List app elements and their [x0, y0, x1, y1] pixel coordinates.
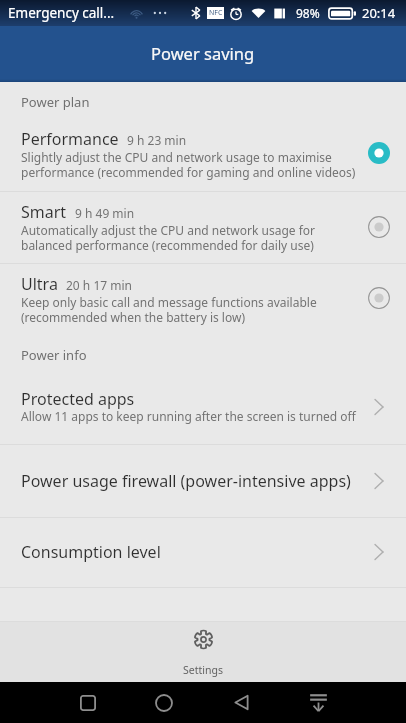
staticText: Settings — [183, 663, 223, 677]
button[interactable]: Smart — [362, 210, 396, 244]
button[interactable]: Performance — [0, 123, 406, 191]
button[interactable]: Home — [142, 682, 186, 723]
button[interactable]: Consumption level — [0, 517, 406, 587]
button[interactable]: Ultra — [362, 281, 396, 315]
staticText: Consumption level — [21, 541, 161, 563]
button[interactable]: Power usage firewall (power-intensive ap… — [0, 444, 406, 517]
staticText: Power plan — [21, 93, 90, 111]
button[interactable]: Back — [219, 682, 263, 723]
staticText: performance (recommended for gaming and … — [21, 164, 356, 180]
staticText: 98% — [296, 5, 320, 21]
staticText: Slightly adjust the CPU and network usag… — [21, 149, 332, 165]
staticText: Ultra — [21, 273, 58, 295]
staticText: Performance — [21, 128, 119, 150]
staticText: Smart — [21, 201, 67, 223]
staticText: NFC — [209, 8, 223, 18]
staticText: Power usage firewall (power-intensive ap… — [21, 470, 351, 492]
staticText: Power saving — [151, 42, 255, 64]
button[interactable]: Selected — [362, 136, 396, 170]
staticText: Keep only basic call and message functio… — [21, 294, 317, 310]
staticText: 9 h 49 min — [75, 205, 135, 221]
button[interactable]: Recents — [66, 682, 110, 723]
button[interactable]: Hide navigation bar — [296, 682, 340, 723]
button[interactable]: Settings — [0, 622, 406, 682]
staticText: balanced performance (recommended for da… — [21, 237, 314, 253]
staticText: Automatically adjust the CPU and network… — [21, 222, 316, 238]
button[interactable]: Smart — [0, 196, 406, 264]
staticText: 9 h 23 min — [127, 132, 187, 148]
staticText: Power info — [21, 346, 87, 364]
staticText: Protected apps — [21, 388, 135, 410]
button[interactable]: Ultra — [0, 268, 406, 336]
staticText: Allow 11 apps to keep running after the … — [21, 408, 356, 424]
staticText: Emergency call... — [8, 4, 115, 22]
button[interactable]: Protected apps — [0, 364, 406, 444]
staticText: 20 h 17 min — [66, 277, 132, 293]
staticText: (recommended when the battery is low) — [21, 309, 246, 325]
staticText: 20:14 — [362, 4, 396, 22]
